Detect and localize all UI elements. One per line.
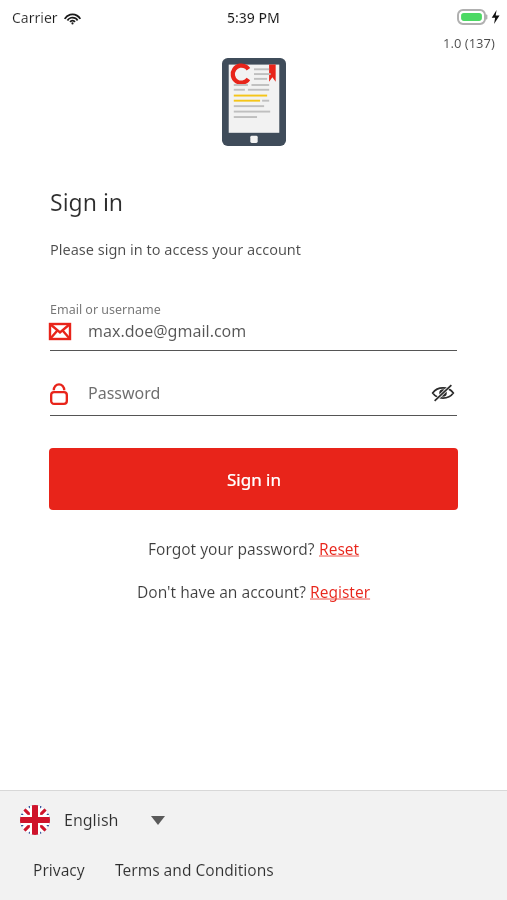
button[interactable]: Terms and Conditions [115, 859, 274, 880]
staticText: Forgot your password? [148, 538, 319, 559]
staticText: 1.0 (137) [443, 34, 495, 52]
staticText: Sign in [227, 468, 281, 491]
button[interactable]: Register [310, 581, 371, 602]
staticText: 5:39 PM [227, 8, 280, 27]
staticText: Register [310, 581, 371, 602]
staticText: Sign in [50, 186, 124, 217]
staticText: Please sign in to access your account [50, 239, 302, 259]
staticText: Password [88, 382, 429, 404]
button[interactable]: Sign in [49, 448, 458, 510]
staticText: Terms and Conditions [115, 859, 274, 880]
button[interactable]: Show password [429, 379, 457, 407]
staticText: Reset [319, 538, 360, 559]
staticText: Don't have an account? [137, 581, 310, 602]
staticText: Email or username [50, 301, 161, 318]
button[interactable]: Reset [319, 538, 360, 559]
button[interactable]: Privacy [33, 859, 85, 880]
staticText: Carrier [12, 8, 58, 27]
staticText: Privacy [33, 859, 85, 880]
staticText: English [64, 809, 119, 831]
staticText: max.doe@gmail.com [88, 320, 247, 342]
button[interactable]: English [20, 805, 165, 835]
